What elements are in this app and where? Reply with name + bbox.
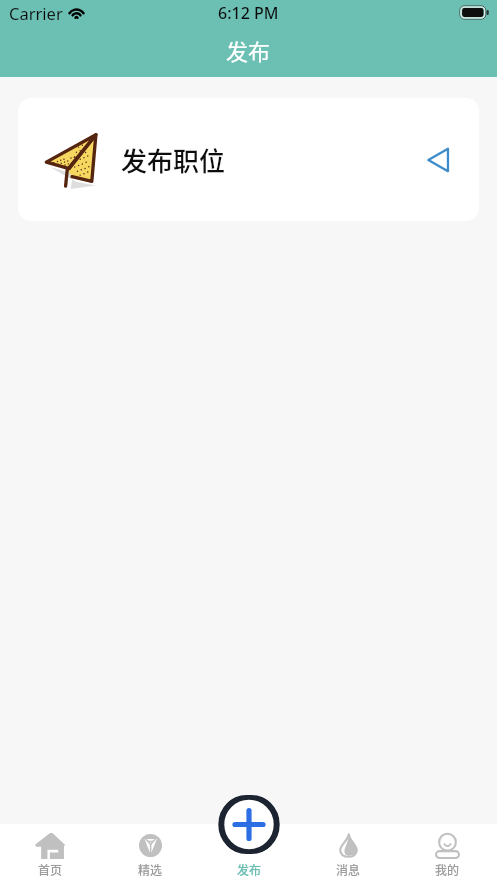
button[interactable]: 前往发布职位 bbox=[421, 142, 457, 178]
button[interactable]: 发布 bbox=[217, 795, 281, 854]
staticText: 我的 bbox=[435, 861, 460, 878]
staticText: 发布 bbox=[226, 34, 271, 66]
button[interactable]: 发布 bbox=[200, 824, 299, 883]
staticText: 发布 bbox=[237, 861, 262, 878]
button[interactable]: 发布职位 bbox=[18, 98, 479, 221]
staticText: 消息 bbox=[336, 861, 361, 878]
button[interactable]: 我的 bbox=[398, 824, 497, 883]
staticText: 精选 bbox=[138, 861, 163, 878]
staticText: Carrier bbox=[9, 2, 63, 24]
button[interactable]: 消息 bbox=[299, 824, 398, 883]
button[interactable]: 精选 bbox=[100, 824, 200, 883]
button[interactable]: 首页 bbox=[0, 824, 100, 883]
staticText: 6:12 PM bbox=[218, 2, 279, 24]
staticText: 发布职位 bbox=[121, 141, 226, 179]
staticText: 首页 bbox=[38, 861, 63, 878]
